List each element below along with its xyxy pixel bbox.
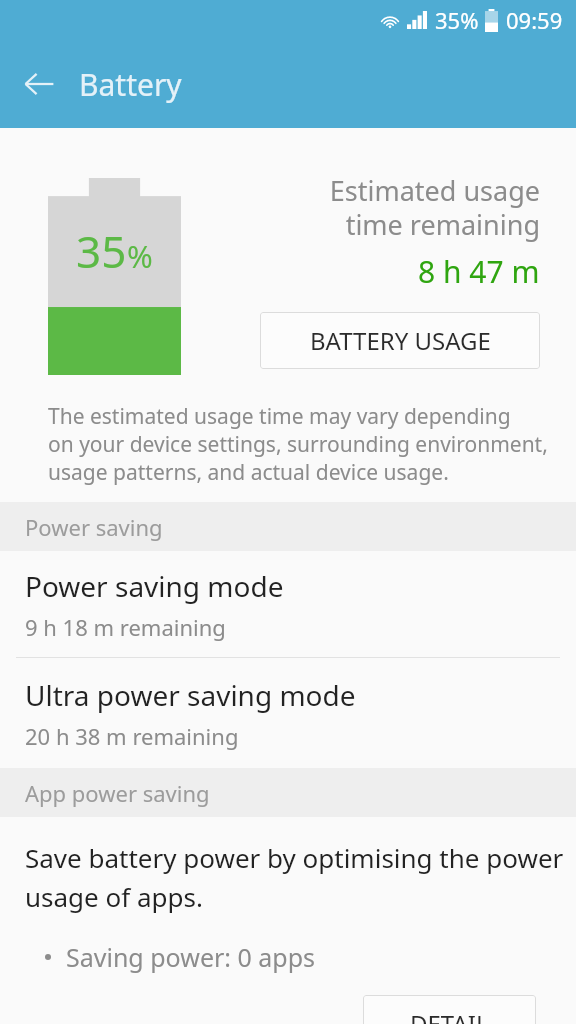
staticText: DETAIL <box>410 1007 489 1024</box>
staticText: 9 h 18 m remaining <box>25 612 226 642</box>
staticText: 20 h 38 m remaining <box>25 721 239 751</box>
staticText: Battery <box>79 64 182 105</box>
staticText: Power saving mode <box>25 567 284 605</box>
staticText: 35% <box>435 5 479 35</box>
staticText: Ultra power saving mode <box>25 676 356 714</box>
staticText: 35 <box>76 221 127 281</box>
staticText: 09:59 <box>506 5 563 35</box>
button[interactable]: BATTERY USAGE <box>260 312 540 369</box>
staticText: % <box>127 235 153 277</box>
button[interactable]: Ultra power saving mode <box>0 658 576 768</box>
staticText: Estimated usage time remaining <box>329 172 540 243</box>
staticText: 8 h 47 m <box>418 251 540 292</box>
button[interactable]: Power saving mode <box>0 551 576 657</box>
staticText: Power saving <box>25 512 163 542</box>
staticText: Saving power: 0 apps <box>66 940 316 974</box>
button[interactable]: DETAIL <box>363 995 536 1024</box>
button[interactable]: Back <box>11 56 67 112</box>
staticText: BATTERY USAGE <box>310 324 491 357</box>
staticText: App power saving <box>25 778 210 808</box>
staticText: The estimated usage time may vary depend… <box>48 402 548 486</box>
staticText: Save battery power by optimising the pow… <box>25 840 564 915</box>
